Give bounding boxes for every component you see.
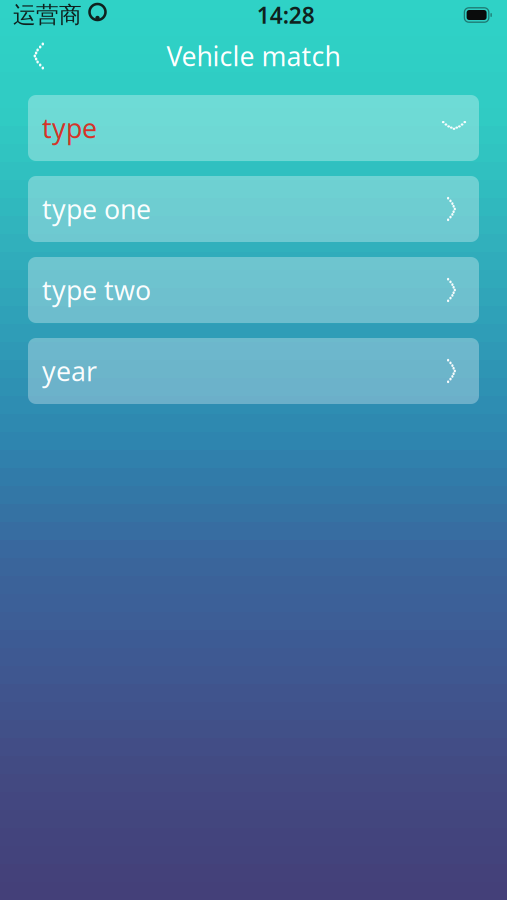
staticText: year [42, 353, 97, 389]
button[interactable]: year [28, 338, 479, 404]
button[interactable]: Back [12, 33, 60, 79]
staticText: type two [42, 272, 151, 308]
button[interactable]: type two [28, 257, 479, 323]
staticText: type one [42, 191, 151, 227]
staticText: 运营商 [13, 1, 82, 29]
button[interactable]: type [28, 95, 479, 161]
staticText: Vehicle match [166, 38, 340, 74]
staticText: 14:28 [257, 0, 315, 30]
button[interactable]: type one [28, 176, 479, 242]
staticText: type [42, 110, 97, 146]
